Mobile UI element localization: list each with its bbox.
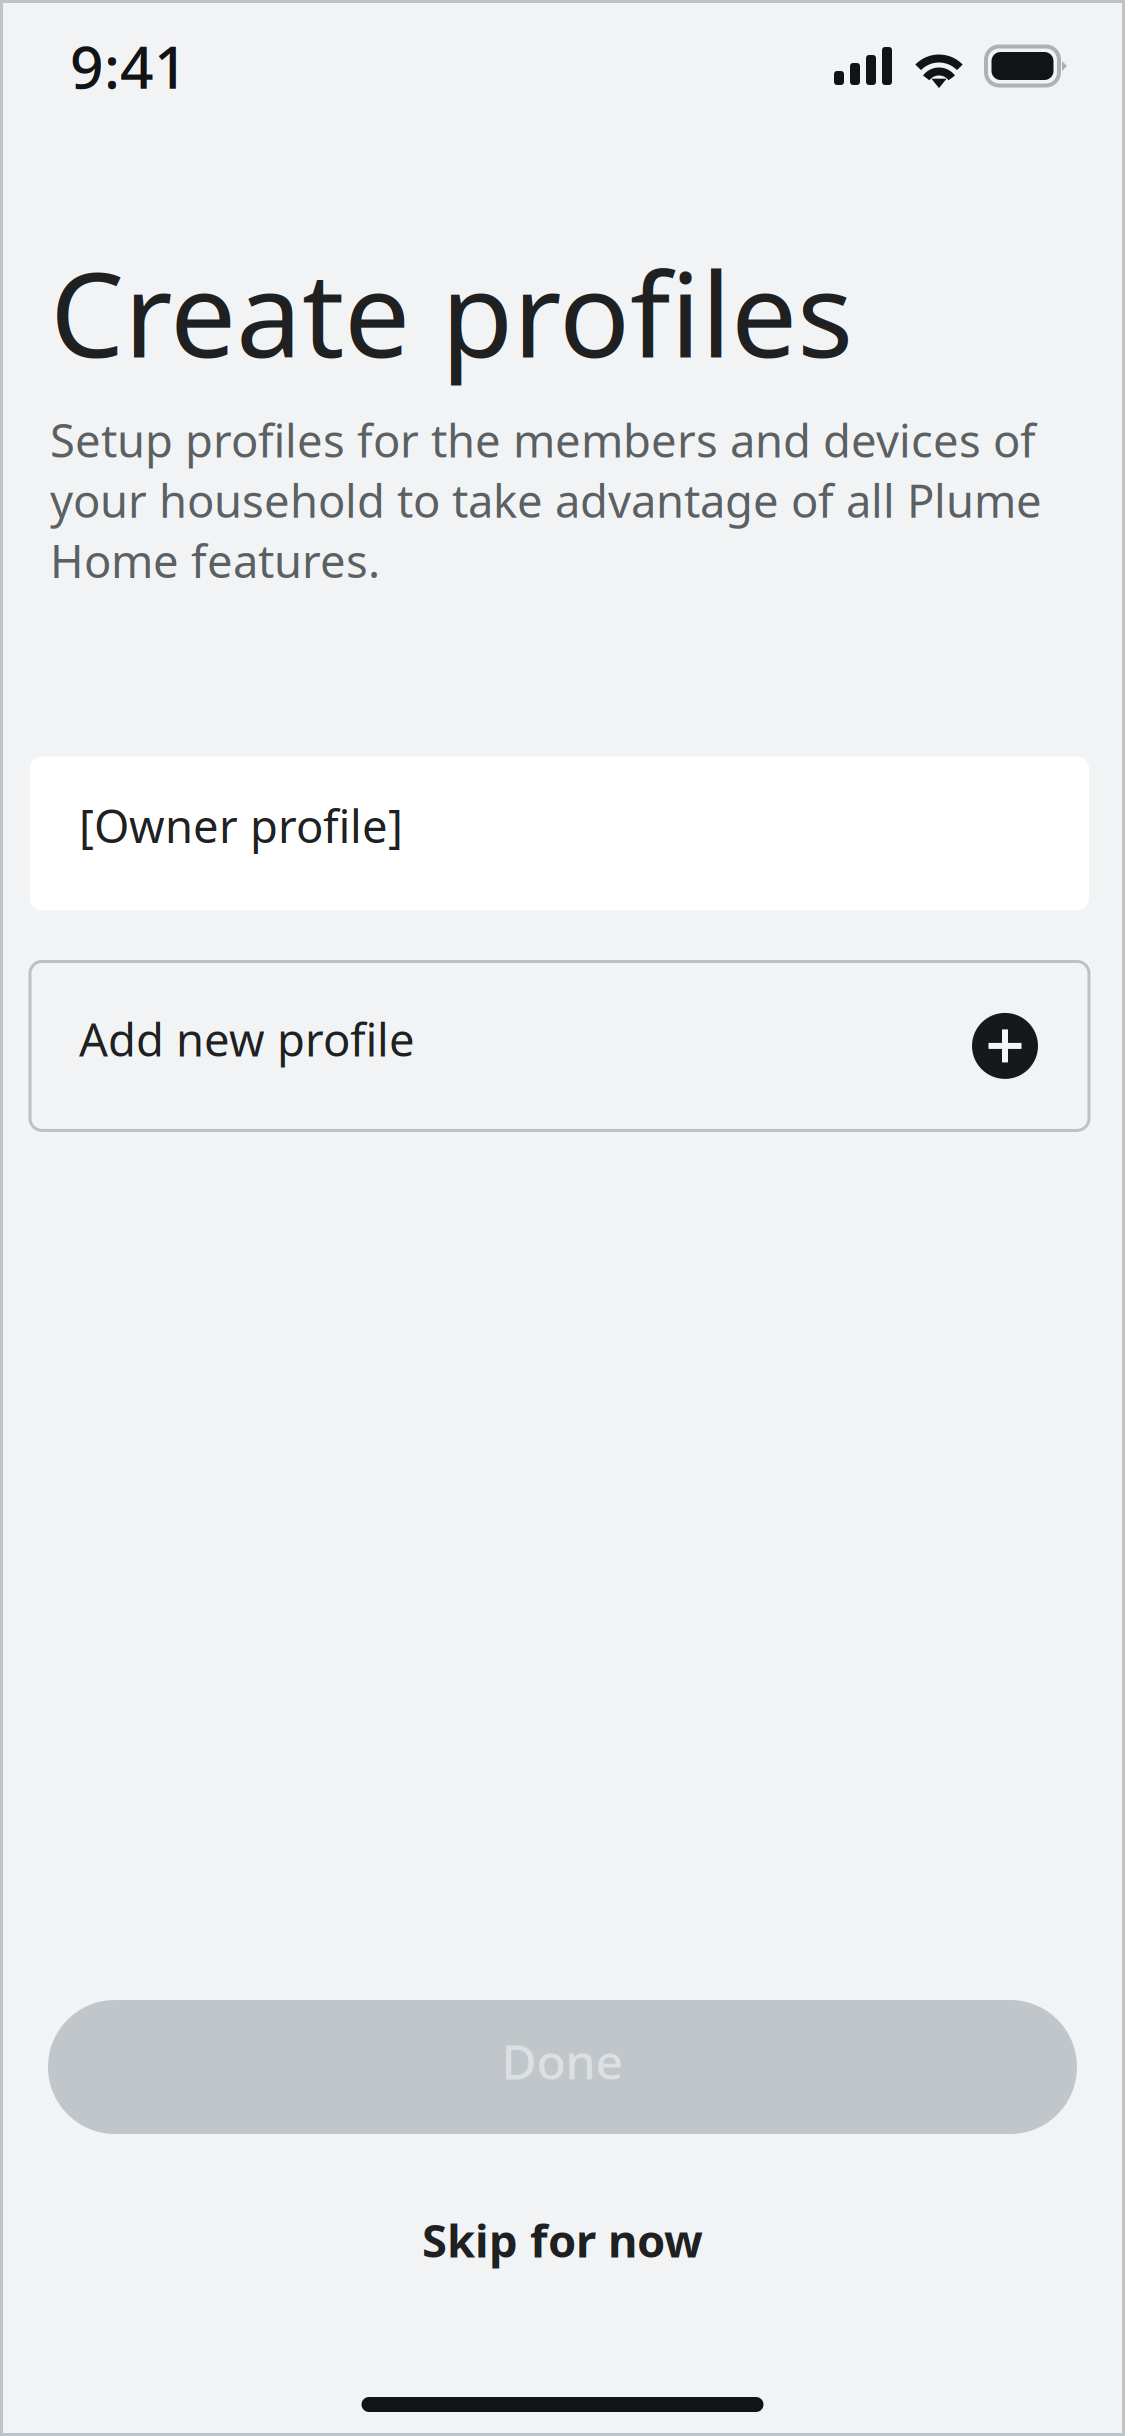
button[interactable]: Skip for now: [0, 2210, 1125, 2270]
staticText: 9:41: [70, 27, 188, 105]
staticText: Create profiles: [50, 234, 853, 390]
button[interactable]: [Owner profile]: [30, 756, 1089, 910]
staticText: Done: [501, 2029, 623, 2093]
button[interactable]: Done: [48, 2000, 1077, 2134]
staticText: Setup profiles for the members and devic…: [50, 410, 1042, 590]
staticText: Add new profile: [79, 1009, 415, 1069]
button[interactable]: Add new profile: [30, 961, 1089, 1130]
button[interactable]: Add profile: [972, 1013, 1038, 1079]
staticText: Skip for now: [422, 2210, 703, 2270]
staticText: [Owner profile]: [79, 795, 403, 855]
